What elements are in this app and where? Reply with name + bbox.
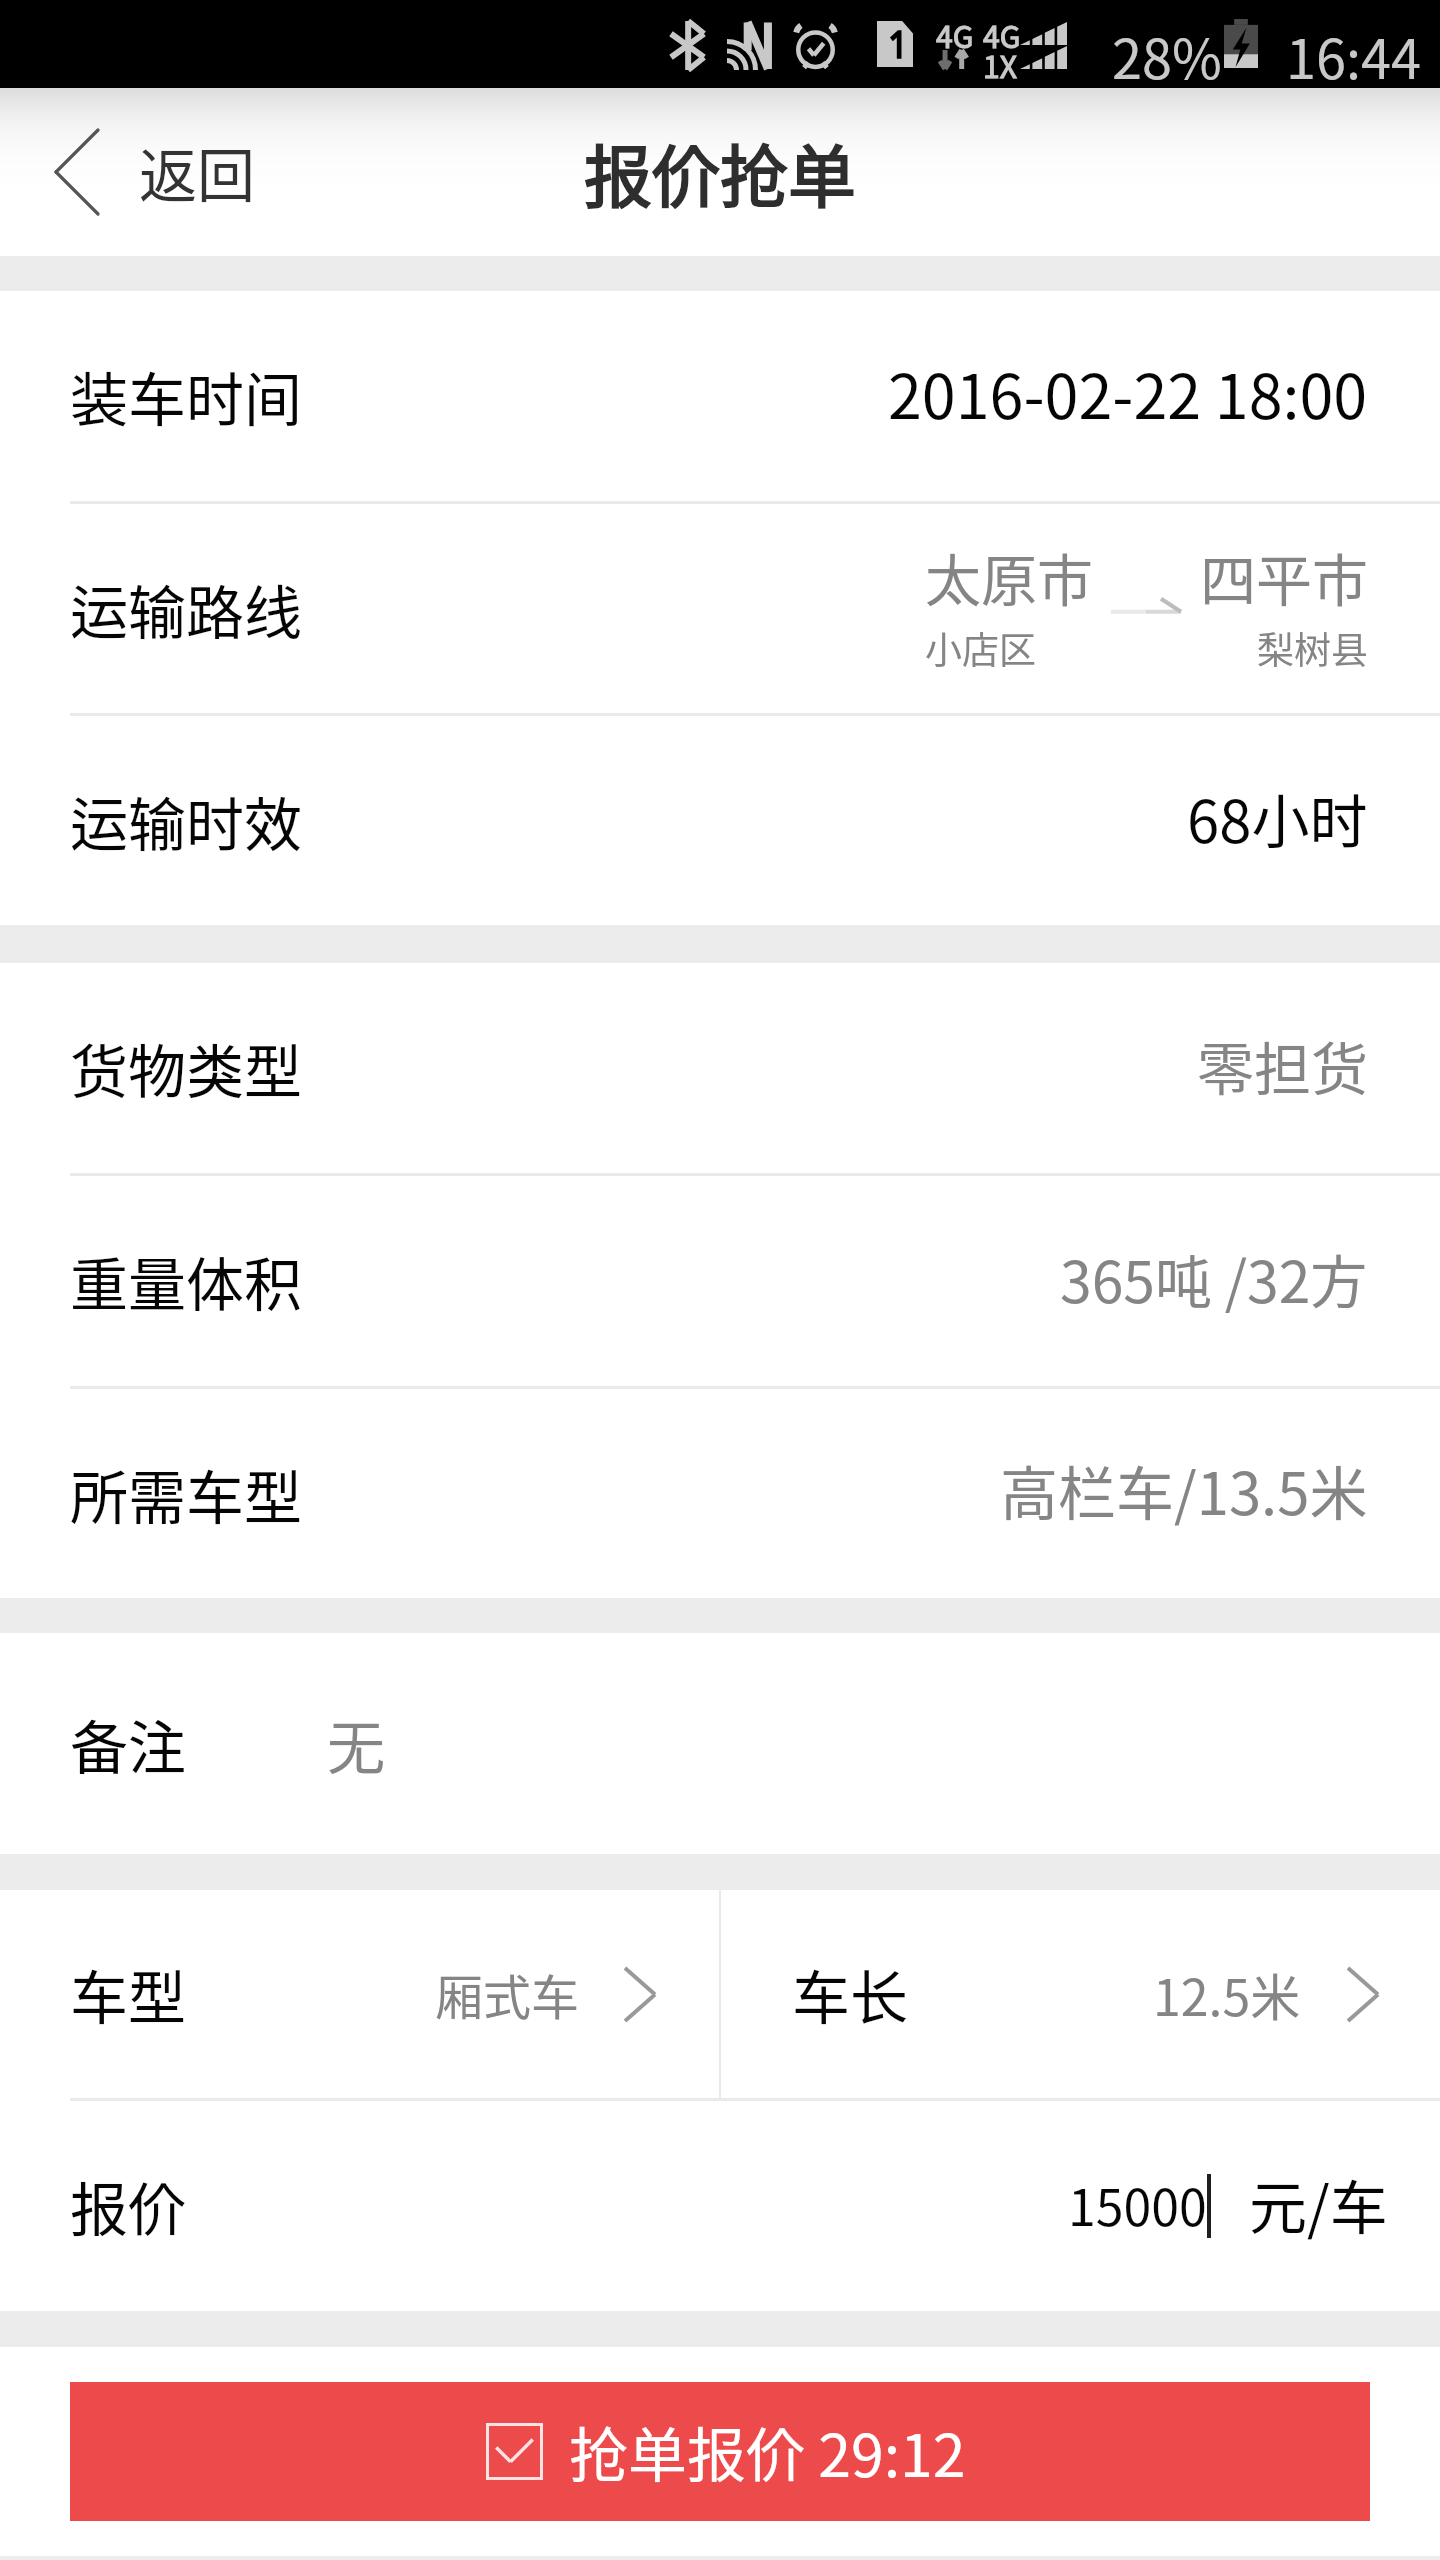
staticText: 1X [983, 43, 1017, 86]
staticText: 零担货 [1197, 1024, 1368, 1107]
staticText: 重量体积 [70, 1239, 303, 1323]
staticText: 抢单报价 29:12 [569, 2409, 966, 2494]
staticText: 12.5米 [1153, 1958, 1301, 2030]
staticText: 车长 [792, 1952, 909, 2036]
staticText: 厢式车 [435, 1959, 580, 2029]
button[interactable]: 备注 [0, 1633, 1440, 1854]
staticText: 车型 [70, 1952, 187, 2036]
staticText: 返回 [139, 130, 256, 214]
button[interactable]: 返回 Back [0, 88, 280, 256]
staticText: 报价抢单 [584, 123, 857, 221]
button[interactable]: 所需车型 [0, 1389, 1440, 1598]
button[interactable]: 运输路线 [0, 504, 1440, 713]
button[interactable]: 抢单报价 29:12 [70, 2382, 1370, 2521]
button[interactable]: 重量体积 [0, 1176, 1440, 1386]
staticText: 2016-02-22 18:00 [888, 348, 1368, 436]
staticText: 装车时间 [70, 354, 303, 438]
button[interactable]: 车长 [721, 1890, 1440, 2098]
staticText: 运输路线 [70, 567, 303, 651]
button[interactable]: 运输时效 [0, 716, 1440, 925]
staticText: 16:44 [1286, 16, 1421, 94]
button[interactable]: 装车时间 [0, 291, 1440, 501]
staticText: 68小时 [1187, 776, 1368, 860]
button[interactable]: 货物类型 [0, 963, 1440, 1173]
staticText: 4G [936, 13, 974, 56]
staticText: 4G [983, 13, 1021, 56]
staticText: 高栏车/13.5米 [1000, 1448, 1368, 1532]
staticText: 小店区 [925, 621, 1036, 675]
staticText: 无 [327, 1702, 386, 1786]
staticText: 365吨 /32方 [1060, 1237, 1368, 1320]
staticText: 15000 [1068, 2168, 1207, 2240]
staticText: 28% [1112, 16, 1222, 94]
staticText: 元/车 [1249, 2162, 1388, 2246]
staticText: 太原市 [925, 536, 1093, 617]
button[interactable]: 车型 [0, 1890, 719, 2098]
staticText: 备注 [70, 1702, 187, 1786]
staticText: 所需车型 [70, 1452, 303, 1536]
staticText: 四平市 [1200, 536, 1368, 617]
staticText: 运输时效 [70, 779, 303, 863]
button[interactable]: 报价 [0, 2101, 1440, 2311]
staticText: 货物类型 [70, 1026, 303, 1110]
staticText: 梨树县 [1257, 621, 1368, 675]
staticText: 报价 [70, 2164, 187, 2248]
